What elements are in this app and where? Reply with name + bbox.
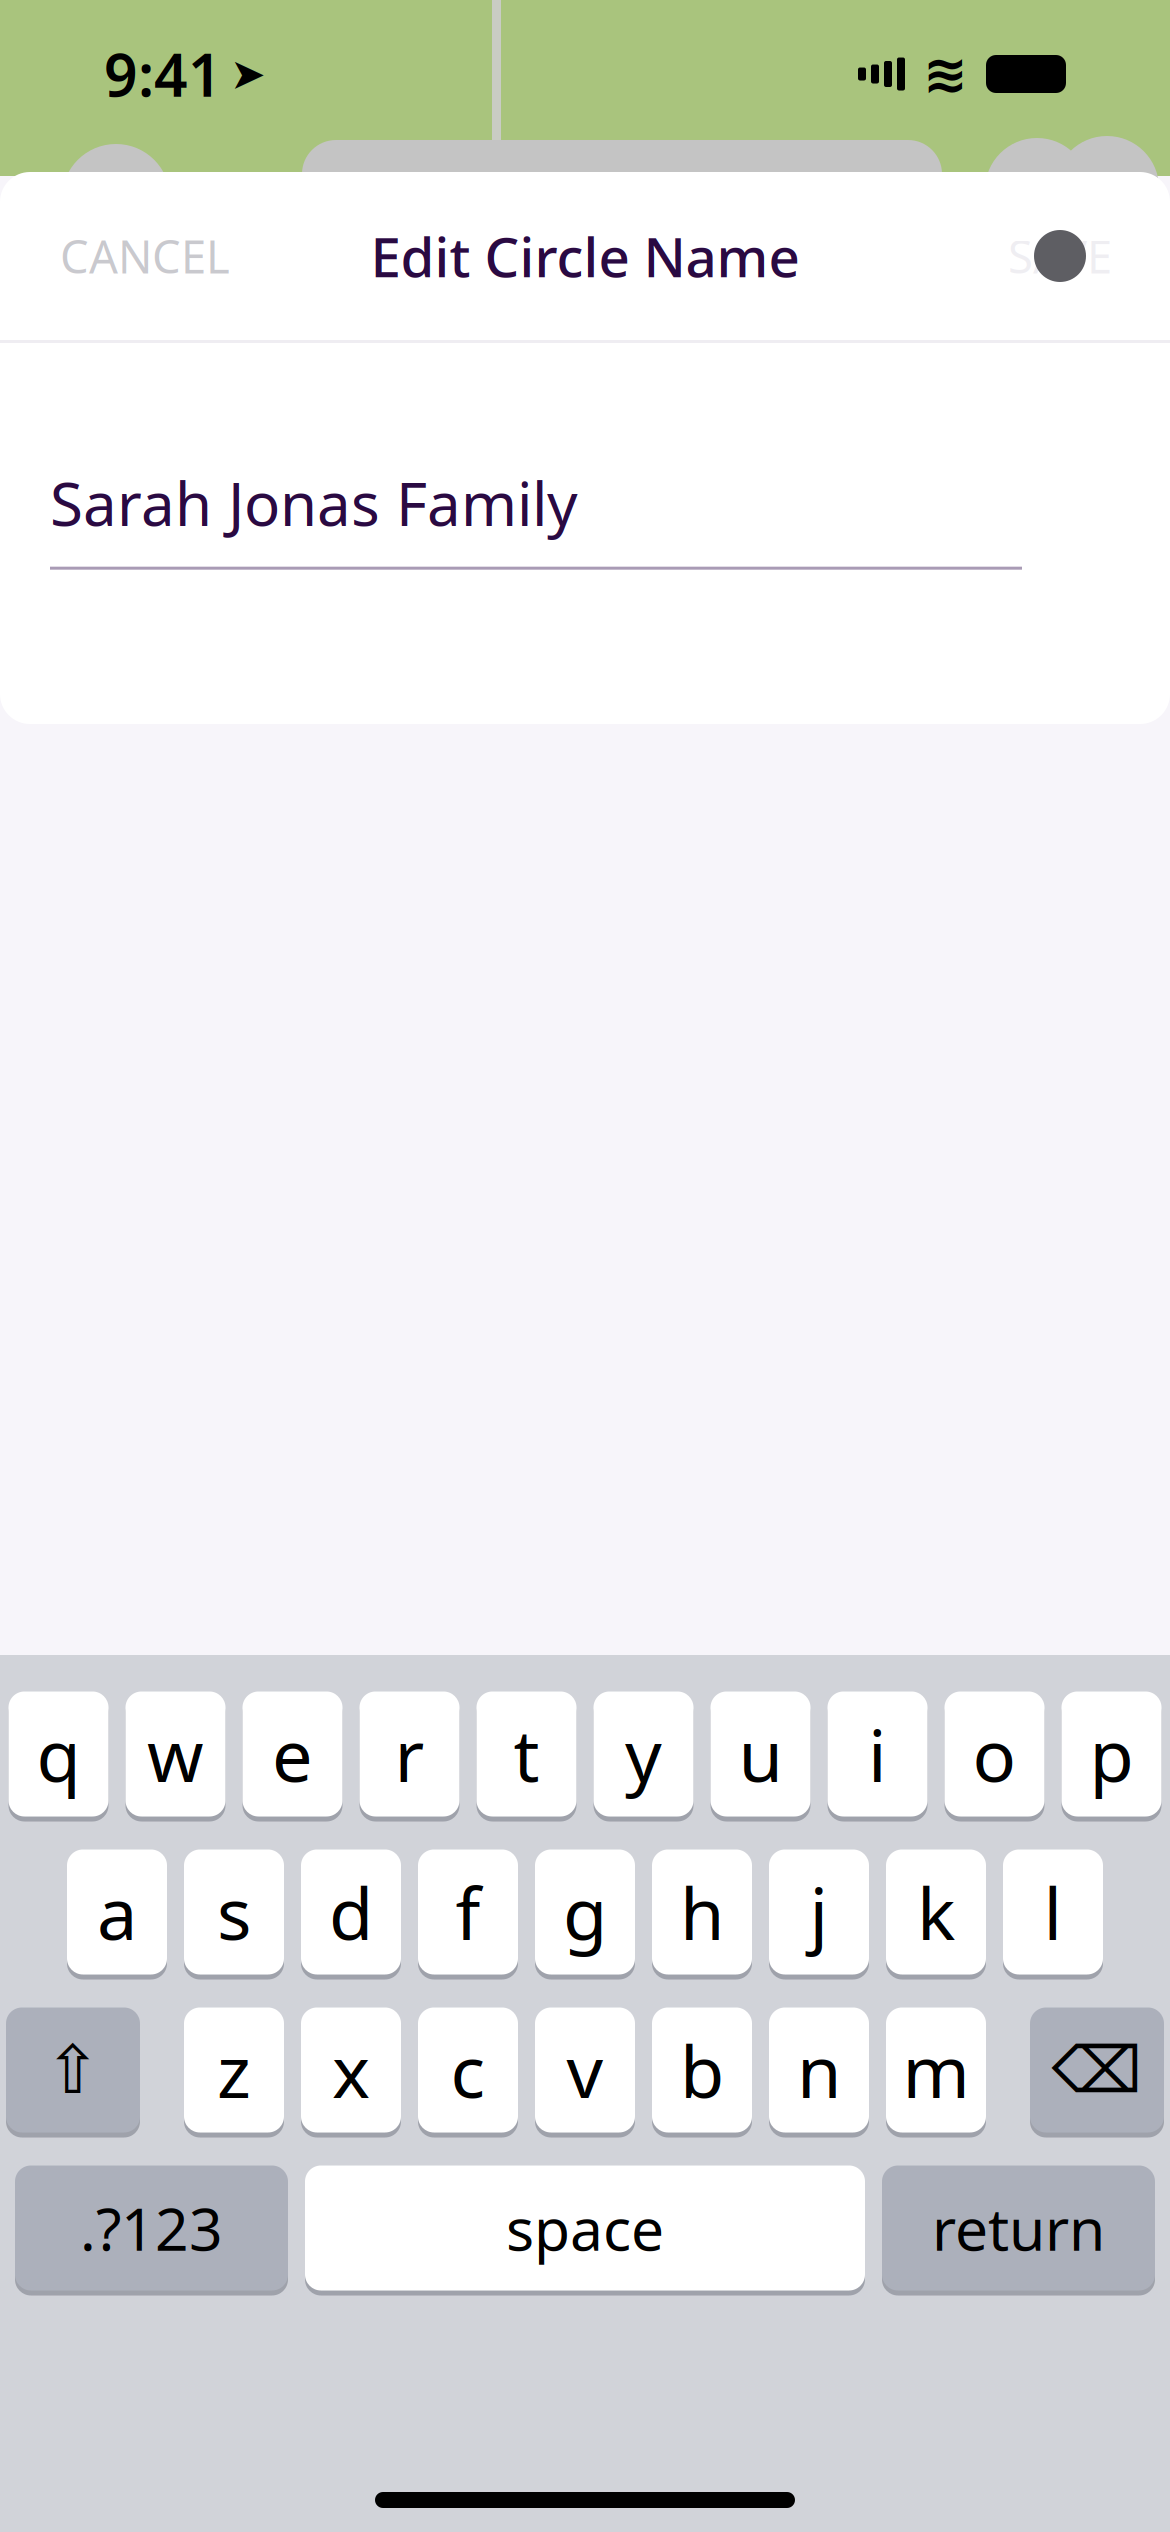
staticText: k — [917, 1864, 955, 1960]
staticText: p — [1089, 1706, 1133, 1802]
button[interactable]: m — [886, 2005, 986, 2135]
staticText: m — [902, 2022, 969, 2118]
staticText: e — [272, 1706, 313, 1802]
staticText: o — [972, 1706, 1016, 1802]
button[interactable]: i — [827, 1689, 927, 1819]
button[interactable]: a — [67, 1847, 167, 1977]
button[interactable]: j — [769, 1847, 869, 1977]
staticText: h — [680, 1864, 724, 1960]
staticText: .?123 — [80, 2189, 223, 2267]
button[interactable]: d — [301, 1847, 401, 1977]
staticText: s — [217, 1864, 251, 1960]
button[interactable]: o — [944, 1689, 1044, 1819]
staticText: ⌫ — [1051, 2034, 1142, 2106]
button[interactable]: l — [1003, 1847, 1103, 1977]
staticText: c — [450, 2022, 485, 2118]
staticText: space — [506, 2189, 664, 2267]
staticText: return — [932, 2189, 1105, 2267]
staticText: ➤ — [230, 50, 266, 98]
button[interactable]: s — [184, 1847, 284, 1977]
staticText: ⇧ — [45, 2032, 101, 2108]
staticText: 9:41 — [104, 35, 222, 113]
button[interactable]: r — [359, 1689, 459, 1819]
button[interactable]: h — [652, 1847, 752, 1977]
button[interactable]: SAVE — [980, 200, 1140, 312]
button[interactable]: f — [418, 1847, 518, 1977]
staticText: n — [797, 2022, 841, 2118]
staticText: f — [455, 1864, 480, 1960]
staticText: b — [680, 2022, 724, 2118]
button[interactable]: q — [8, 1689, 108, 1819]
staticText: l — [1043, 1864, 1062, 1960]
button[interactable]: z — [184, 2005, 284, 2135]
staticText: t — [513, 1706, 539, 1802]
button[interactable]: CANCEL — [32, 200, 258, 312]
staticText: d — [329, 1864, 373, 1960]
staticText: q — [36, 1706, 80, 1802]
staticText: u — [738, 1706, 782, 1802]
staticText: i — [868, 1706, 887, 1802]
button[interactable]: ⇧ — [6, 2005, 140, 2135]
staticText: w — [147, 1706, 204, 1802]
staticText: v — [566, 2022, 603, 2118]
button[interactable]: x — [301, 2005, 401, 2135]
button[interactable]: p — [1061, 1689, 1161, 1819]
button[interactable]: .?123 — [15, 2163, 288, 2293]
staticText: ≋ — [923, 44, 968, 104]
button[interactable]: w — [125, 1689, 225, 1819]
button[interactable]: e — [242, 1689, 342, 1819]
button[interactable]: v — [535, 2005, 635, 2135]
staticText: CANCEL — [60, 226, 230, 286]
staticText: a — [97, 1864, 137, 1960]
button[interactable]: t — [476, 1689, 576, 1819]
staticText: SAVE — [1008, 226, 1112, 286]
staticText: j — [809, 1864, 828, 1960]
button[interactable]: ⌫ — [1030, 2005, 1164, 2135]
staticText: Edit Circle Name — [370, 220, 799, 292]
button[interactable]: k — [886, 1847, 986, 1977]
button[interactable]: b — [652, 2005, 752, 2135]
staticText: g — [563, 1864, 607, 1960]
button[interactable]: space — [305, 2163, 865, 2293]
staticText: x — [332, 2022, 370, 2118]
staticText: y — [625, 1706, 662, 1802]
button[interactable]: c — [418, 2005, 518, 2135]
button[interactable]: return — [882, 2163, 1155, 2293]
button[interactable]: u — [710, 1689, 810, 1819]
staticText: Sarah Jonas Family — [50, 463, 578, 543]
staticText: r — [394, 1706, 424, 1802]
button[interactable]: n — [769, 2005, 869, 2135]
button[interactable]: y — [593, 1689, 693, 1819]
button[interactable]: g — [535, 1847, 635, 1977]
staticText: z — [217, 2022, 251, 2118]
